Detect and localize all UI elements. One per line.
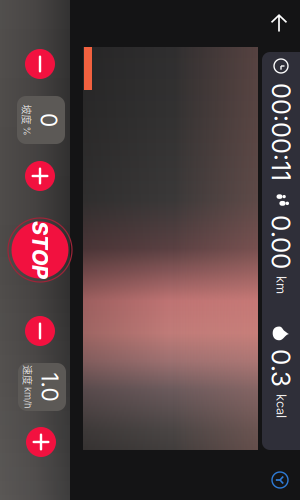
staticText: STOP (121, 347, 179, 373)
staticText: 1.0 (272, 336, 300, 364)
staticText: 坡度 (4, 366, 24, 380)
button[interactable]: Decrease speed (216, 345, 246, 375)
staticText: km/h (287, 367, 300, 378)
button[interactable]: STOP (118, 328, 182, 392)
button[interactable]: Increase incline (61, 345, 91, 375)
button[interactable]: 1.0 (263, 334, 300, 382)
staticText: 0.3 (249, 103, 287, 135)
button[interactable]: 0 (0, 335, 44, 383)
staticText: 00:00:11 (0, 104, 81, 134)
staticText: % (26, 368, 35, 379)
staticText: 速度 (265, 365, 285, 379)
